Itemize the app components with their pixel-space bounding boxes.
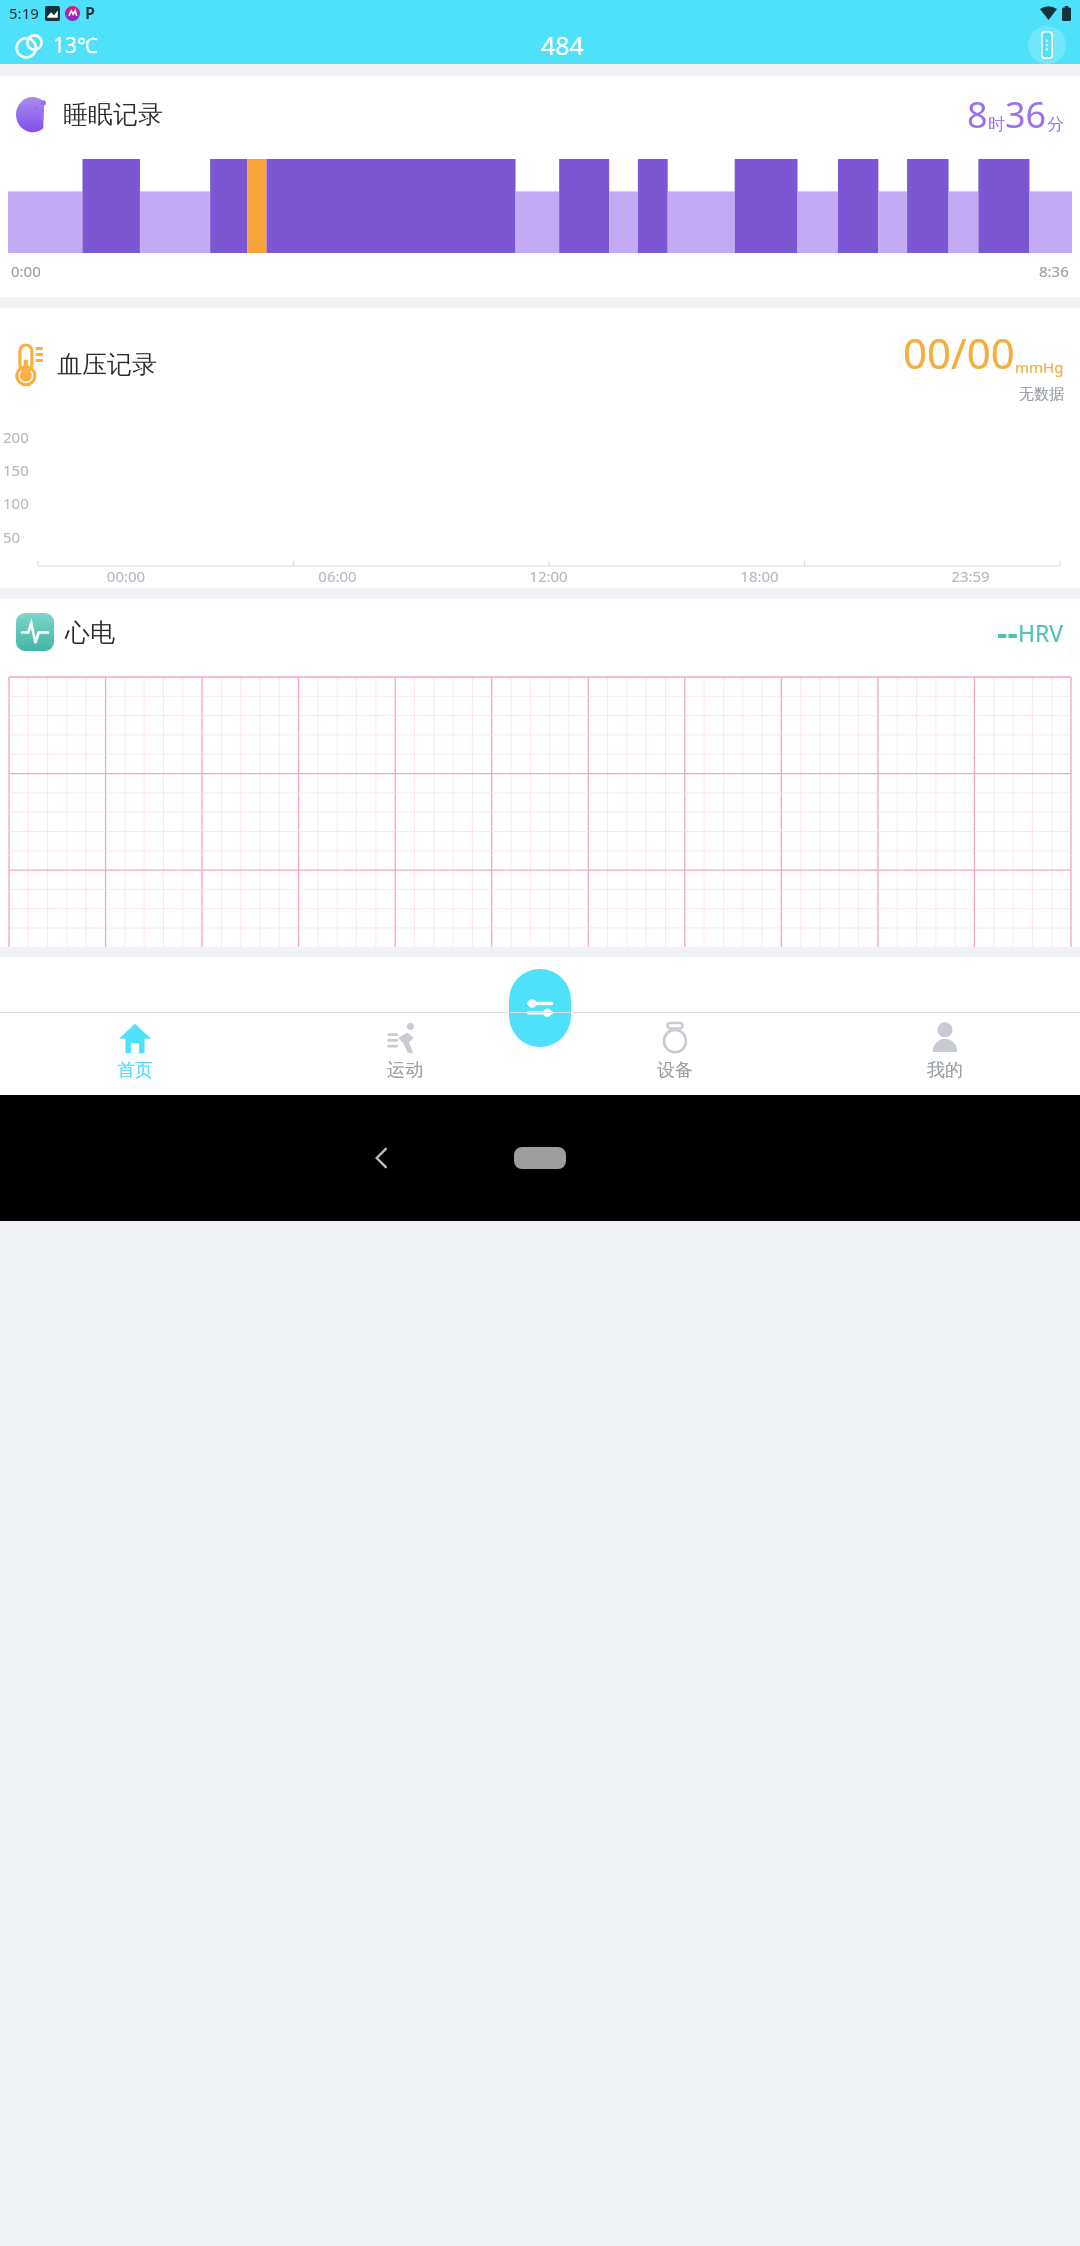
staticText: 18:00 — [654, 566, 865, 586]
staticText: 无数据 — [1019, 385, 1064, 404]
button[interactable]: 运动 — [270, 1013, 540, 1095]
staticText: 00/00 — [903, 324, 1015, 381]
staticText: 0:00 — [11, 261, 41, 281]
staticText: 484 — [541, 28, 584, 62]
staticText: 睡眠记录 — [63, 99, 163, 130]
other: Back — [370, 1146, 394, 1170]
staticText: 分 — [1047, 114, 1064, 135]
staticText: 200 — [3, 427, 37, 447]
staticText: 时 — [988, 114, 1005, 135]
staticText: 06:00 — [232, 566, 443, 586]
button[interactable]: Device — [1028, 26, 1066, 64]
staticText: 36 — [1005, 90, 1047, 139]
staticText: 心电 — [65, 617, 115, 648]
staticText: 首页 — [117, 1059, 153, 1082]
staticText: P — [85, 2, 95, 24]
staticText: mmHg — [1015, 357, 1064, 377]
button[interactable]: 心电 — [0, 599, 1080, 947]
button[interactable]: 睡眠记录 — [0, 76, 1080, 297]
staticText: 13℃ — [53, 31, 98, 60]
staticText: 血压记录 — [57, 349, 157, 380]
staticText: 23:59 — [865, 566, 1076, 586]
staticText: 5:19 — [9, 3, 39, 23]
staticText: 50 — [3, 527, 37, 547]
staticText: 8:36 — [1039, 261, 1069, 281]
button[interactable]: 设备 — [540, 1013, 810, 1095]
staticText: 100 — [3, 493, 37, 513]
staticText: 设备 — [657, 1059, 693, 1082]
button[interactable]: 我的 — [810, 1013, 1080, 1095]
button[interactable]: 血压记录 — [0, 308, 1080, 588]
button[interactable]: Home — [514, 1147, 566, 1169]
staticText: 我的 — [927, 1059, 963, 1082]
staticText: 12:00 — [443, 566, 654, 586]
button[interactable]: Settings — [509, 969, 571, 1047]
staticText: 8 — [967, 90, 988, 139]
staticText: 00:00 — [20, 566, 232, 586]
button[interactable]: 首页 — [0, 1013, 270, 1095]
staticText: 150 — [3, 460, 37, 480]
staticText: 运动 — [387, 1059, 423, 1082]
staticText: HRV — [1018, 617, 1064, 648]
